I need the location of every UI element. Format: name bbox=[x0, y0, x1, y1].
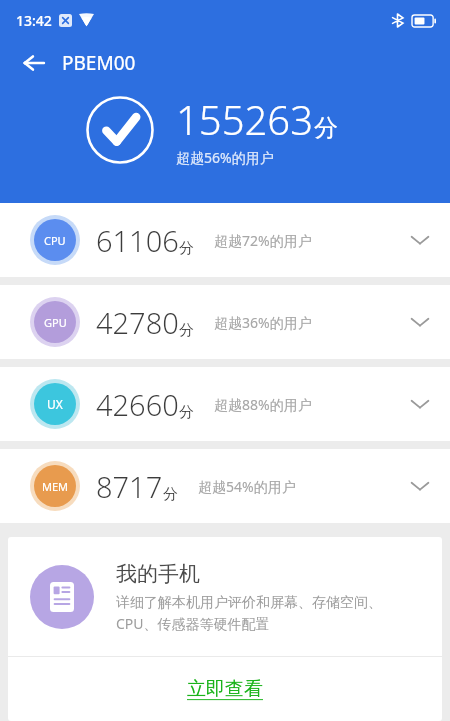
staticText: 分 bbox=[179, 239, 194, 258]
staticText: 61106 bbox=[96, 221, 179, 260]
button[interactable]: CPU bbox=[0, 203, 450, 277]
staticText: 155263 bbox=[176, 92, 314, 146]
staticText: PBEM00 bbox=[62, 50, 136, 76]
button[interactable]: MEM bbox=[0, 449, 450, 523]
staticText: 详细了解本机用户评价和屏幕、存储空间、 bbox=[116, 594, 382, 612]
staticText: 立即查看 bbox=[187, 677, 263, 701]
staticText: 42660 bbox=[96, 385, 179, 424]
staticText: 分 bbox=[179, 321, 194, 340]
button[interactable]: 我的手机 bbox=[8, 537, 442, 656]
staticText: 8717 bbox=[96, 467, 163, 506]
staticText: CPU、传感器等硬件配置 bbox=[116, 614, 270, 633]
staticText: 42780 bbox=[96, 303, 179, 342]
staticText: 超越54%的用户 bbox=[198, 477, 296, 496]
staticText: 分 bbox=[314, 113, 338, 143]
button[interactable]: UX bbox=[0, 367, 450, 441]
staticText: 超越88%的用户 bbox=[214, 395, 312, 414]
staticText: CPU bbox=[44, 233, 66, 248]
staticText: MEM bbox=[42, 479, 69, 494]
staticText: 分 bbox=[163, 485, 178, 504]
staticText: 13:42 bbox=[16, 11, 52, 30]
staticText: 超越36%的用户 bbox=[214, 313, 312, 332]
staticText: GPU bbox=[44, 315, 67, 330]
button[interactable]: 立即查看 bbox=[8, 657, 442, 721]
staticText: 我的手机 bbox=[116, 561, 200, 587]
staticText: 分 bbox=[179, 403, 194, 422]
staticText: UX bbox=[47, 396, 63, 412]
button[interactable]: Back bbox=[14, 43, 54, 83]
staticText: 超越56%的用户 bbox=[176, 148, 274, 167]
button[interactable]: GPU bbox=[0, 285, 450, 359]
staticText: 超越72%的用户 bbox=[214, 231, 312, 250]
